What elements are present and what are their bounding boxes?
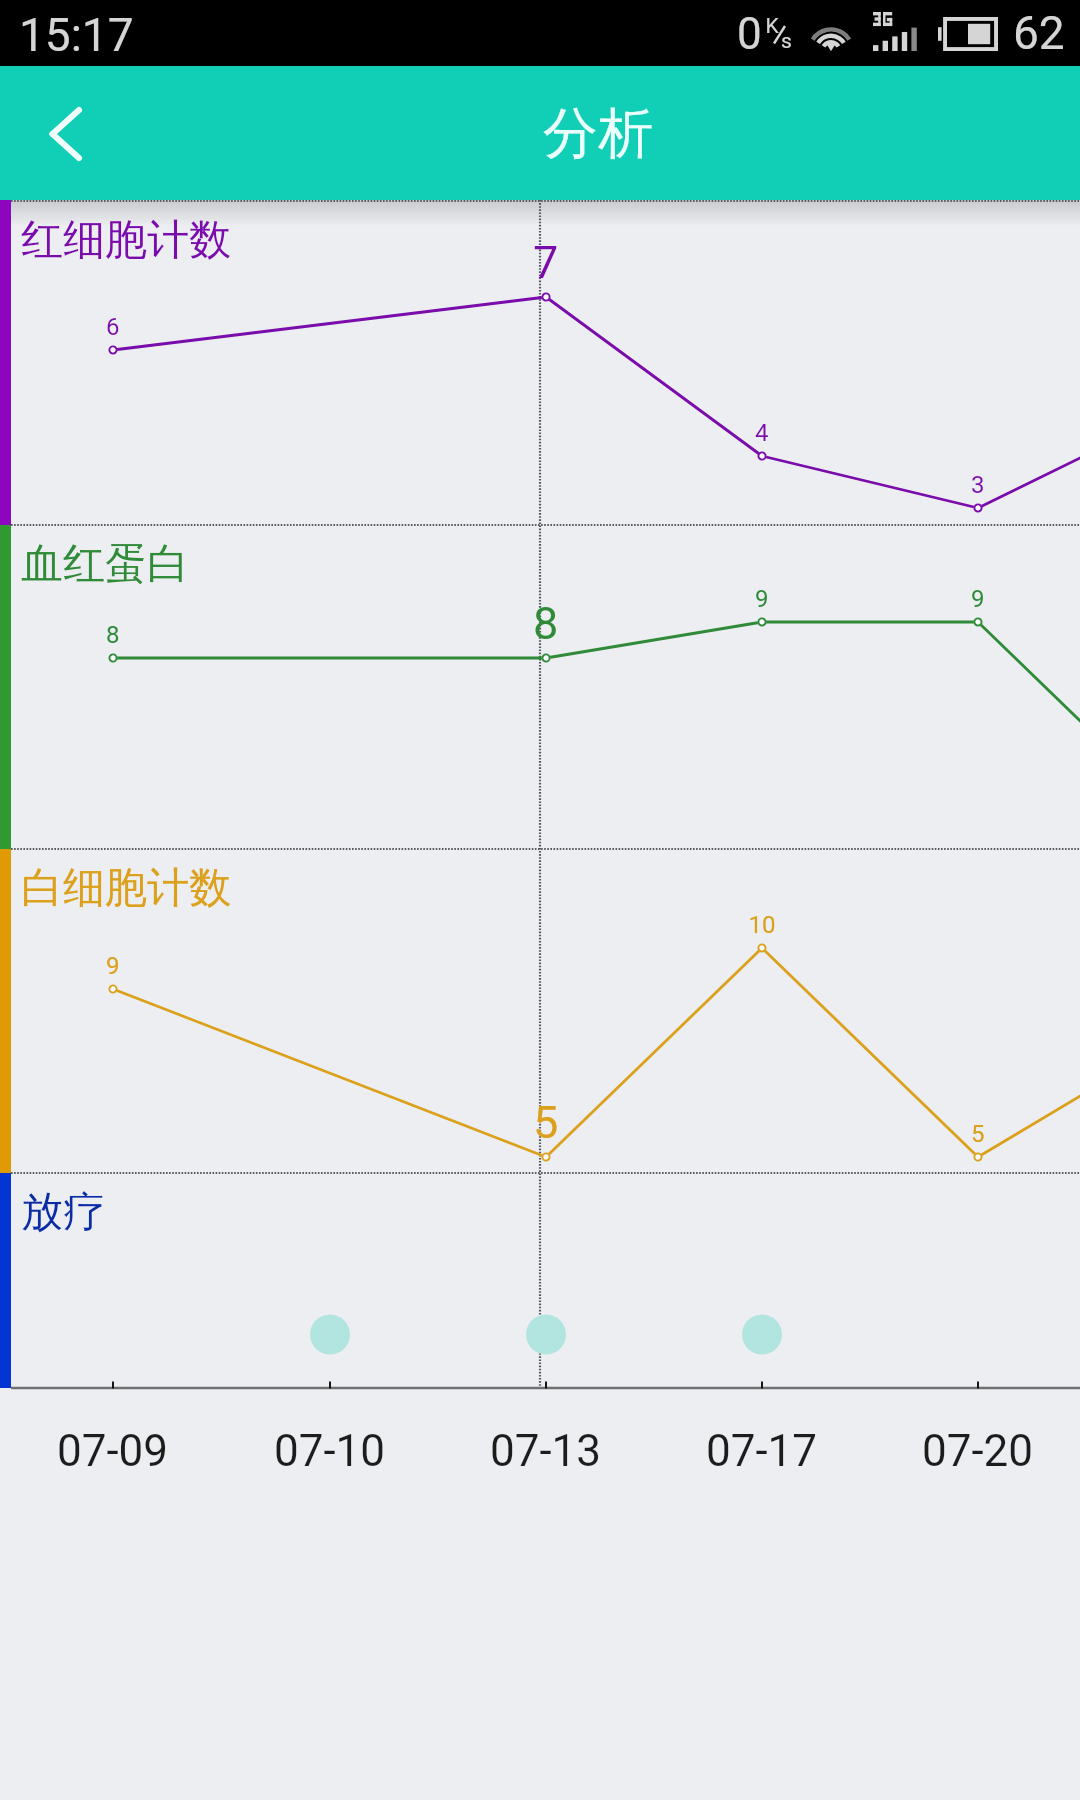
button[interactable]: 放疗	[0, 1173, 1080, 1388]
staticText: 分析	[543, 99, 653, 168]
button[interactable]: Back	[0, 66, 134, 200]
button[interactable]: 红细胞计数	[0, 200, 1080, 525]
button[interactable]: 白细胞计数	[0, 849, 1080, 1173]
button[interactable]: 血红蛋白	[0, 525, 1080, 849]
